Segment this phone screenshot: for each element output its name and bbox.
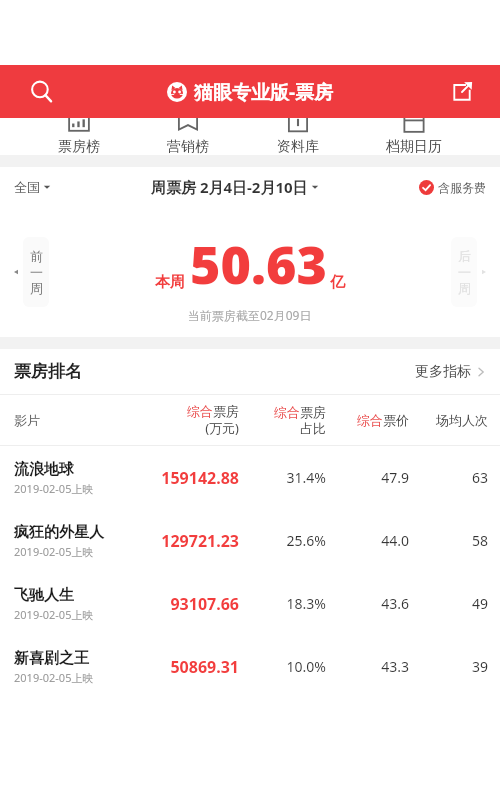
- button[interactable]: 含服务费: [419, 180, 486, 195]
- staticText: 47.9: [326, 468, 409, 487]
- staticText: 本周: [155, 273, 185, 292]
- staticText: 129721.23: [135, 530, 239, 552]
- staticText: 58: [409, 531, 488, 550]
- staticText: 综合票价: [357, 412, 409, 428]
- staticText: 49: [409, 594, 488, 613]
- staticText: 含服务费: [438, 180, 486, 195]
- staticText: 2019-02-05上映: [14, 670, 94, 685]
- staticText: 票房榜: [58, 138, 100, 155]
- staticText: 疯狂的外星人: [14, 523, 104, 542]
- staticText: 飞驰人生: [14, 586, 74, 605]
- staticText: 综合票房: [274, 404, 326, 420]
- button[interactable]: 全国: [14, 179, 51, 195]
- staticText: 159142.88: [135, 467, 239, 489]
- button[interactable]: 资料库: [267, 110, 329, 155]
- staticText: 更多指标: [415, 363, 471, 381]
- button[interactable]: 周票房 2月4日-2月10日: [151, 177, 319, 197]
- button[interactable]: 流浪地球: [0, 446, 500, 509]
- staticText: 营销榜: [167, 138, 209, 155]
- button[interactable]: 档期日历: [376, 110, 452, 155]
- staticText: 43.6: [326, 594, 409, 613]
- staticText: 一: [458, 264, 471, 280]
- staticText: 18.3%: [239, 594, 326, 613]
- staticText: 2019-02-05上映: [14, 607, 94, 622]
- staticText: 全国: [14, 179, 40, 195]
- staticText: 影片: [14, 412, 135, 428]
- staticText: (万元): [205, 419, 239, 437]
- staticText: 当前票房截至02月09日: [188, 307, 312, 323]
- staticText: 10.0%: [239, 657, 326, 676]
- staticText: 31.4%: [239, 468, 326, 487]
- button[interactable]: 更多指标: [415, 363, 486, 381]
- button[interactable]: Search: [22, 72, 62, 112]
- staticText: 亿: [330, 273, 345, 292]
- staticText: 档期日历: [386, 138, 442, 155]
- staticText: 新喜剧之王: [14, 649, 89, 668]
- staticText: 一: [30, 264, 43, 280]
- staticText: 票房排名: [14, 361, 82, 382]
- staticText: 后: [458, 248, 471, 264]
- staticText: 2019-02-05上映: [14, 544, 94, 559]
- button[interactable]: 后: [451, 237, 488, 307]
- staticText: 50869.31: [135, 656, 239, 678]
- button[interactable]: 飞驰人生: [0, 572, 500, 635]
- button[interactable]: 疯狂的外星人: [0, 509, 500, 572]
- button[interactable]: 票房榜: [48, 110, 110, 155]
- staticText: 2019-02-05上映: [14, 481, 94, 496]
- staticText: 综合票房: [187, 403, 239, 419]
- staticText: 场均人次: [436, 412, 488, 428]
- staticText: 周: [30, 280, 43, 296]
- staticText: 25.6%: [239, 531, 326, 550]
- staticText: 39: [409, 657, 488, 676]
- button[interactable]: 营销榜: [157, 110, 219, 155]
- staticText: 周票房 2月4日-2月10日: [151, 177, 308, 197]
- staticText: 流浪地球: [14, 460, 74, 479]
- button[interactable]: 前: [12, 237, 49, 307]
- staticText: 43.3: [326, 657, 409, 676]
- staticText: 63: [409, 468, 488, 487]
- staticText: 周: [458, 280, 471, 296]
- button[interactable]: 新喜剧之王: [0, 635, 500, 698]
- staticText: 猫眼专业版-票房: [194, 79, 334, 105]
- staticText: 93107.66: [135, 593, 239, 615]
- staticText: 前: [30, 248, 43, 264]
- button[interactable]: Share: [444, 74, 480, 110]
- staticText: 44.0: [326, 531, 409, 550]
- staticText: 占比: [300, 420, 326, 436]
- staticText: 50.63: [190, 228, 327, 299]
- staticText: 资料库: [277, 138, 319, 155]
